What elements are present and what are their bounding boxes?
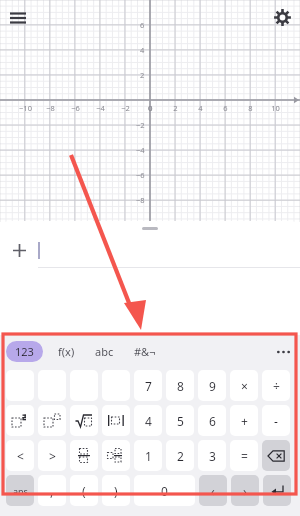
staticText: 2 — [173, 103, 178, 113]
staticText: › — [243, 483, 247, 499]
staticText: −4 — [96, 103, 105, 113]
staticText: = — [241, 448, 248, 464]
button[interactable]: 6 — [198, 405, 226, 436]
button[interactable]: More options — [270, 339, 296, 365]
staticText: −8 — [46, 103, 55, 113]
staticText: abc — [95, 344, 114, 359]
staticText: 5 — [177, 413, 184, 429]
button[interactable]: Menu — [4, 4, 32, 32]
button[interactable]: ‹ — [199, 475, 227, 506]
button[interactable]: = — [230, 440, 258, 471]
staticText: 6 — [140, 20, 145, 30]
button[interactable]: 0 — [134, 475, 195, 506]
button[interactable]: ( — [70, 475, 98, 506]
button[interactable]: ans — [6, 475, 34, 506]
button[interactable]: 7 — [134, 370, 162, 401]
staticText: 0 — [161, 483, 168, 499]
staticText: ( — [82, 483, 86, 499]
staticText: −6 — [71, 103, 80, 113]
button[interactable]: 8 — [166, 370, 194, 401]
button[interactable]: Absolute value — [102, 405, 130, 436]
staticText: 8 — [248, 103, 253, 113]
staticText: 9 — [209, 378, 216, 394]
staticText: 4 — [140, 45, 145, 55]
staticText: 7 — [145, 378, 152, 394]
staticText: 0 — [148, 103, 153, 113]
button[interactable]: ) — [102, 475, 130, 506]
staticText: −10 — [19, 103, 32, 113]
staticText: < — [17, 448, 24, 464]
button[interactable]: 123 — [6, 341, 43, 362]
button[interactable]: Add expression — [0, 234, 38, 267]
staticText: ÷ — [273, 378, 280, 394]
staticText: ‹ — [211, 483, 215, 499]
staticText: 2 — [177, 448, 184, 464]
button[interactable]: < — [6, 440, 34, 471]
button[interactable]: Enter — [263, 475, 291, 506]
button[interactable]: Settings — [268, 3, 296, 31]
staticText: , — [50, 483, 54, 499]
staticText: 10 — [271, 103, 280, 113]
staticText: - — [274, 413, 278, 429]
staticText: × — [241, 378, 248, 394]
button[interactable]: ÷ — [262, 370, 290, 401]
staticText: ) — [114, 483, 118, 499]
button[interactable]: , — [38, 475, 66, 506]
button[interactable]: > — [38, 440, 66, 471]
staticText: −8 — [136, 195, 145, 205]
button[interactable]: Square — [6, 405, 34, 436]
staticText: ans — [13, 485, 28, 497]
staticText: 1 — [145, 448, 152, 464]
button[interactable]: 5 — [166, 405, 194, 436]
button[interactable]: f(x) — [52, 340, 81, 363]
staticText: 6 — [209, 413, 216, 429]
staticText: > — [49, 448, 56, 464]
staticText: + — [241, 413, 248, 429]
staticText: 2 — [140, 70, 145, 80]
staticText: 3 — [209, 448, 216, 464]
button[interactable]: Square root — [70, 405, 98, 436]
button[interactable]: 3 — [198, 440, 226, 471]
button[interactable]: - — [262, 405, 290, 436]
button[interactable]: › — [231, 475, 259, 506]
button[interactable]: 2 — [166, 440, 194, 471]
staticText: −2 — [121, 103, 130, 113]
button[interactable]: 1 — [134, 440, 162, 471]
button[interactable]: Mixed number — [102, 440, 130, 471]
button[interactable]: Power — [38, 405, 66, 436]
staticText: −2 — [136, 120, 145, 130]
staticText: −4 — [136, 145, 145, 155]
staticText: 6 — [223, 103, 228, 113]
staticText: f(x) — [58, 344, 75, 359]
button[interactable]: × — [230, 370, 258, 401]
staticText: −6 — [136, 170, 145, 180]
staticText: 4 — [145, 413, 152, 429]
button[interactable]: 9 — [198, 370, 226, 401]
staticText: 8 — [177, 378, 184, 394]
staticText: 4 — [198, 103, 203, 113]
button[interactable]: Fraction — [70, 440, 98, 471]
staticText: 123 — [15, 344, 34, 359]
button[interactable]: Backspace — [262, 440, 290, 471]
button[interactable]: abc — [89, 340, 120, 363]
button[interactable]: + — [230, 405, 258, 436]
staticText: 0 — [148, 103, 153, 113]
button[interactable]: 4 — [134, 405, 162, 436]
button[interactable]: #&¬ — [128, 340, 162, 363]
staticText: #&¬ — [134, 344, 156, 359]
